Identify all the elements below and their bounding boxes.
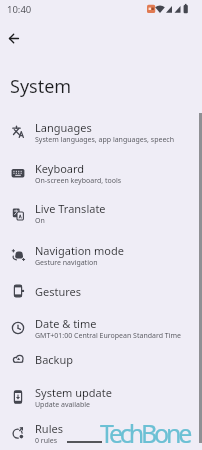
button[interactable]: Date & time bbox=[0, 308, 202, 348]
button[interactable]: Live Translate bbox=[0, 193, 202, 234]
button[interactable]: System update bbox=[0, 377, 202, 417]
staticText: GMT+01:00 Central European Standard Time bbox=[35, 331, 182, 341]
staticText: Gesture navigation bbox=[35, 258, 98, 268]
button[interactable] bbox=[5, 30, 23, 48]
button[interactable]: Gestures bbox=[0, 276, 202, 306]
staticText: On-screen keyboard, tools bbox=[35, 176, 122, 186]
staticText: Backup bbox=[35, 352, 74, 367]
button[interactable]: Languages bbox=[0, 112, 202, 152]
button[interactable]: Rules bbox=[0, 413, 202, 450]
staticText: Keyboard bbox=[35, 161, 85, 176]
staticText: 0 rules bbox=[35, 436, 58, 446]
button[interactable]: Navigation mode bbox=[0, 235, 202, 275]
staticText: Live Translate bbox=[35, 201, 106, 216]
staticText: Update available bbox=[35, 400, 90, 410]
staticText: On bbox=[35, 216, 45, 226]
staticText: Navigation mode bbox=[35, 243, 124, 258]
staticText: Gestures bbox=[35, 284, 82, 299]
staticText: Rules bbox=[35, 421, 63, 436]
staticText: Date & time bbox=[35, 316, 97, 331]
button[interactable]: Backup bbox=[0, 344, 202, 374]
staticText: Languages bbox=[35, 120, 92, 135]
staticText: System update bbox=[35, 385, 112, 400]
staticText: TechBone bbox=[100, 416, 190, 450]
staticText: 10:40 bbox=[7, 3, 32, 16]
button[interactable]: Keyboard bbox=[0, 153, 202, 193]
staticText: System languages, app languages, speech bbox=[35, 135, 175, 145]
staticText: System bbox=[10, 74, 72, 99]
